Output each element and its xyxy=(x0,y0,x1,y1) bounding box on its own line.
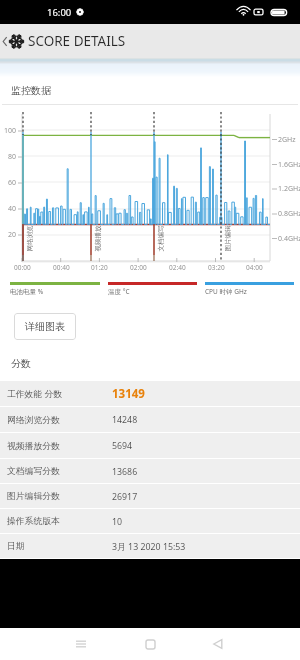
staticText: 01:20 xyxy=(91,263,108,272)
button[interactable]: 文档编写分数 xyxy=(0,459,300,484)
staticText: 1.6GHz xyxy=(278,160,300,170)
button[interactable]: 网络浏览分数 xyxy=(0,407,300,433)
staticText: 视频播放 xyxy=(93,225,102,251)
staticText: 60 xyxy=(8,178,17,188)
staticText: 02:40 xyxy=(169,263,186,272)
staticText: 14248 xyxy=(112,414,138,426)
staticText: 0.4GHz xyxy=(278,234,300,244)
staticText: 80 xyxy=(8,152,17,162)
staticText: 工作效能 分数 xyxy=(7,388,63,400)
staticText: 图片编辑分数 xyxy=(7,491,60,502)
staticText: SCORE DETAILS xyxy=(28,32,126,50)
staticText: 日期 xyxy=(7,541,25,552)
staticText: 26917 xyxy=(112,491,138,503)
staticText: 03:20 xyxy=(208,263,225,272)
staticText: 详细图表 xyxy=(25,320,65,333)
button[interactable]: Back xyxy=(198,628,238,660)
staticText: 2GHz xyxy=(278,135,296,145)
staticText: 操作系统版本 xyxy=(7,516,60,527)
staticText: 02:00 xyxy=(130,263,147,272)
staticText: 13686 xyxy=(112,466,138,478)
staticText: 图片编辑 xyxy=(223,225,232,251)
staticText: 文档编写分数 xyxy=(7,466,60,477)
staticText: 分数 xyxy=(11,357,31,370)
button[interactable]: Home xyxy=(130,628,170,660)
staticText: 20 xyxy=(8,230,17,240)
staticText: 100 xyxy=(4,126,17,136)
button[interactable]: 详细图表 xyxy=(14,313,76,340)
button[interactable]: 日期 xyxy=(0,534,300,559)
staticText: 00:00 xyxy=(14,263,31,272)
staticText: 网络浏览 xyxy=(25,225,34,251)
button[interactable]: Back xyxy=(0,34,24,49)
staticText: 监控数据 xyxy=(11,84,51,97)
staticText: 1.2GHz xyxy=(278,184,300,194)
staticText: 网络浏览分数 xyxy=(7,415,60,426)
staticText: CPU 时钟 GHz xyxy=(205,287,247,296)
button[interactable]: Recent apps xyxy=(61,628,101,660)
staticText: 电池电量 % xyxy=(10,287,44,296)
staticText: 0.8GHz xyxy=(278,209,300,219)
staticText: 3月 13 2020 15:53 xyxy=(112,541,186,553)
staticText: 10 xyxy=(112,516,123,528)
staticText: 温度 °C xyxy=(108,287,130,296)
staticText: 40 xyxy=(8,204,17,214)
staticText: 00:40 xyxy=(53,263,70,272)
staticText: 04:00 xyxy=(246,263,263,272)
staticText: 文档编写 xyxy=(156,225,165,251)
button[interactable]: 操作系统版本 xyxy=(0,509,300,534)
staticText: 13149 xyxy=(112,386,145,402)
staticText: 16:00 xyxy=(47,6,72,19)
staticText: 5694 xyxy=(112,440,133,452)
button[interactable]: 视频播放分数 xyxy=(0,433,300,459)
staticText: 视频播放分数 xyxy=(7,441,60,452)
button[interactable]: 工作效能 分数 xyxy=(0,381,300,407)
button[interactable]: 图片编辑分数 xyxy=(0,484,300,509)
